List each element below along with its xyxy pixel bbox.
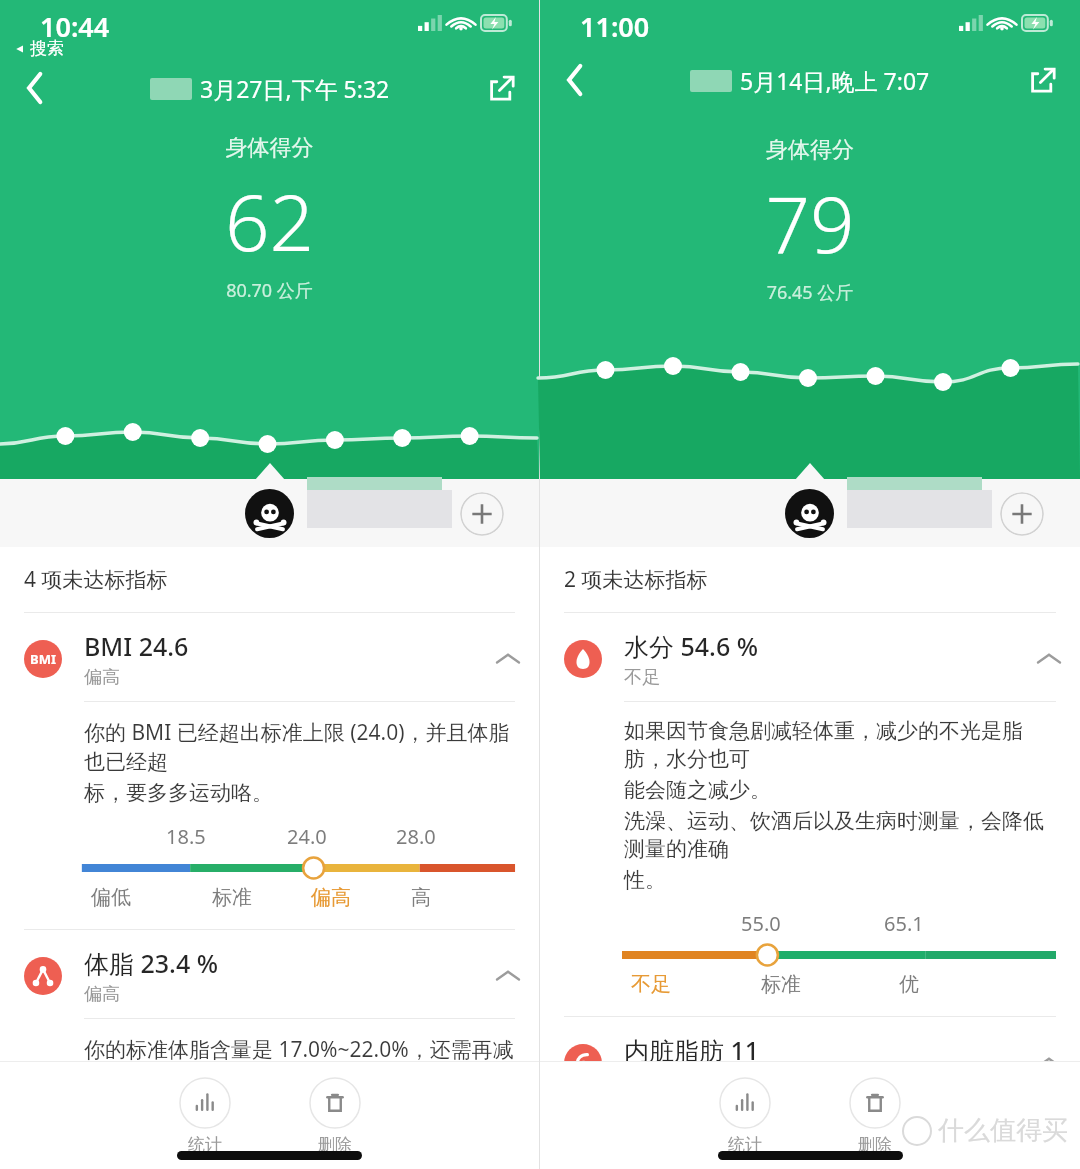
staticText: 你的标准体脂含量是 17.0%~22.0%，还需再减掉 1.1 公斤 xyxy=(84,1035,521,1094)
button[interactable]: 删除 xyxy=(845,1073,905,1159)
staticText: 水分 54.6 % xyxy=(624,629,759,663)
staticText: 标准 xyxy=(212,885,252,910)
staticText: 如果因节食急剧减轻体重，减少的不光是脂肪，水分也可 xyxy=(624,718,1062,772)
staticText: 高 xyxy=(411,885,431,910)
staticText: BMI xyxy=(30,650,56,668)
staticText: 需将内脏脂肪等级降低到 9 以内，请长期坚持运动以减少 xyxy=(624,1122,1062,1169)
staticText: 不足 xyxy=(631,972,671,997)
button[interactable]: Share xyxy=(1020,57,1066,103)
staticText: 10:44 xyxy=(40,8,110,45)
staticText: 你的 BMI 已经超出标准上限 (24.0)，并且体脂也已经超 xyxy=(84,718,521,775)
button[interactable]: 统计 xyxy=(715,1073,775,1159)
staticText: 偏高 xyxy=(84,666,120,689)
staticText: 能会随之减少。 xyxy=(624,777,771,803)
staticText: 删除 xyxy=(318,1134,352,1155)
staticText: 5月14日,晚上 7:07 xyxy=(740,65,930,96)
staticText: 76.45 公斤 xyxy=(540,280,1080,305)
staticText: 62 xyxy=(0,168,539,274)
staticText: 标，要多多运动咯。 xyxy=(84,780,273,806)
staticText: 55.0 xyxy=(741,910,781,937)
staticText: 身体得分 xyxy=(0,134,539,162)
staticText: 偏低 xyxy=(91,885,131,910)
staticText: 洗澡、运动、饮酒后以及生病时测量，会降低测量的准确 xyxy=(624,808,1062,862)
staticText: 65.1 xyxy=(884,910,924,937)
staticText: 搜索 xyxy=(30,38,64,59)
staticText: 79 xyxy=(540,170,1080,276)
staticText: 80.70 公斤 xyxy=(0,278,539,303)
staticText: 不足 xyxy=(624,666,660,689)
staticText: 标准 xyxy=(761,972,801,997)
button[interactable]: BMI xyxy=(0,613,539,701)
button[interactable]: 统计 xyxy=(175,1073,235,1159)
button[interactable]: Add xyxy=(460,492,504,536)
staticText: 28.0 xyxy=(396,823,436,850)
staticText: 删除 xyxy=(858,1134,892,1155)
button[interactable]: User avatar xyxy=(785,489,834,538)
button[interactable]: User avatar xyxy=(245,489,294,538)
staticText: 2 项未达标指标 xyxy=(564,565,708,594)
button[interactable]: Share xyxy=(479,65,525,111)
staticText: 内脏脂肪 11 xyxy=(624,1033,760,1067)
staticText: 4 项未达标指标 xyxy=(24,565,168,594)
button[interactable]: 水分 54.6 % xyxy=(540,613,1080,701)
button[interactable]: 体脂 23.4 % xyxy=(0,930,539,1018)
staticText: 18.5 xyxy=(166,823,206,850)
button[interactable]: Back xyxy=(12,65,58,111)
staticText: 性。 xyxy=(624,867,666,893)
staticText: BMI 24.6 xyxy=(84,629,189,663)
staticText: 体脂 23.4 % xyxy=(84,946,219,980)
button[interactable]: Add xyxy=(1000,492,1044,536)
staticText: 偏高 xyxy=(311,885,351,910)
staticText: 24.0 xyxy=(287,823,327,850)
staticText: 身体得分 xyxy=(540,136,1080,164)
staticText: 统计 xyxy=(728,1134,762,1155)
staticText: 偏高 xyxy=(84,983,120,1006)
button[interactable]: 内脏脂肪 11 xyxy=(540,1017,1080,1105)
staticText: 什么值得买 xyxy=(938,1114,1068,1147)
staticText: 3月27日,下午 5:32 xyxy=(200,73,390,104)
staticText: 优 xyxy=(899,972,919,997)
button[interactable]: Back xyxy=(552,57,598,103)
staticText: 统计 xyxy=(188,1134,222,1155)
button[interactable]: 删除 xyxy=(305,1073,365,1159)
staticText: 11:00 xyxy=(580,8,650,45)
